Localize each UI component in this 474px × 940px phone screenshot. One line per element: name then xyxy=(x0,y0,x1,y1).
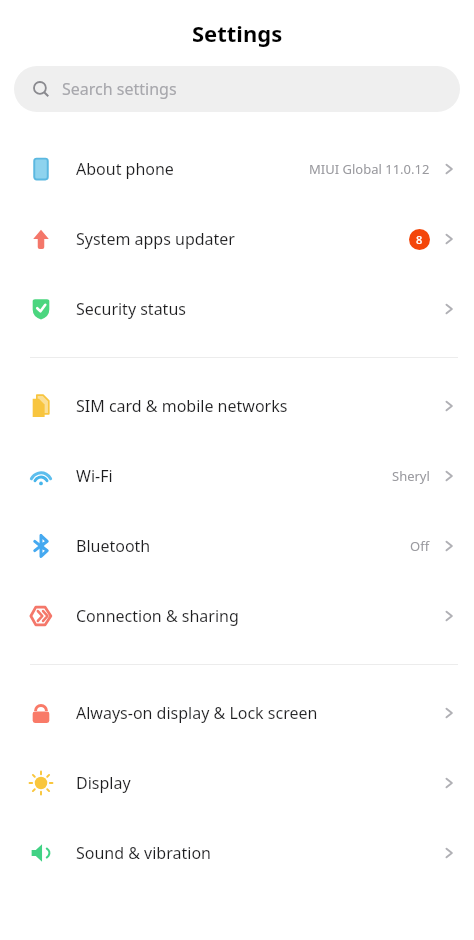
staticText: Always-on display & Lock screen xyxy=(76,702,318,724)
button[interactable]: Search settings xyxy=(14,66,460,112)
button[interactable]: Security status xyxy=(0,274,474,344)
staticText: System apps updater xyxy=(76,228,235,250)
staticText: 8 xyxy=(416,232,423,247)
button[interactable]: Bluetooth xyxy=(0,511,474,581)
button[interactable]: Wi-Fi xyxy=(0,441,474,511)
staticText: Connection & sharing xyxy=(76,605,239,627)
button[interactable]: Connection & sharing xyxy=(0,581,474,651)
staticText: Bluetooth xyxy=(76,535,151,557)
staticText: MIUI Global 11.0.12 xyxy=(309,160,430,178)
staticText: Search settings xyxy=(62,78,177,100)
staticText: About phone xyxy=(76,158,174,180)
button[interactable]: Sound & vibration xyxy=(0,818,474,888)
staticText: Sound & vibration xyxy=(76,842,211,864)
button[interactable]: About phone xyxy=(0,134,474,204)
staticText: Display xyxy=(76,772,131,794)
staticText: Off xyxy=(410,537,430,555)
staticText: Sheryl xyxy=(392,467,430,485)
staticText: Wi-Fi xyxy=(76,465,113,487)
staticText: Security status xyxy=(76,298,186,320)
staticText: Settings xyxy=(192,18,283,48)
button[interactable]: Display xyxy=(0,748,474,818)
staticText: SIM card & mobile networks xyxy=(76,395,288,417)
button[interactable]: System apps updater xyxy=(0,204,474,274)
button[interactable]: Always-on display & Lock screen xyxy=(0,678,474,748)
button[interactable]: SIM card & mobile networks xyxy=(0,371,474,441)
